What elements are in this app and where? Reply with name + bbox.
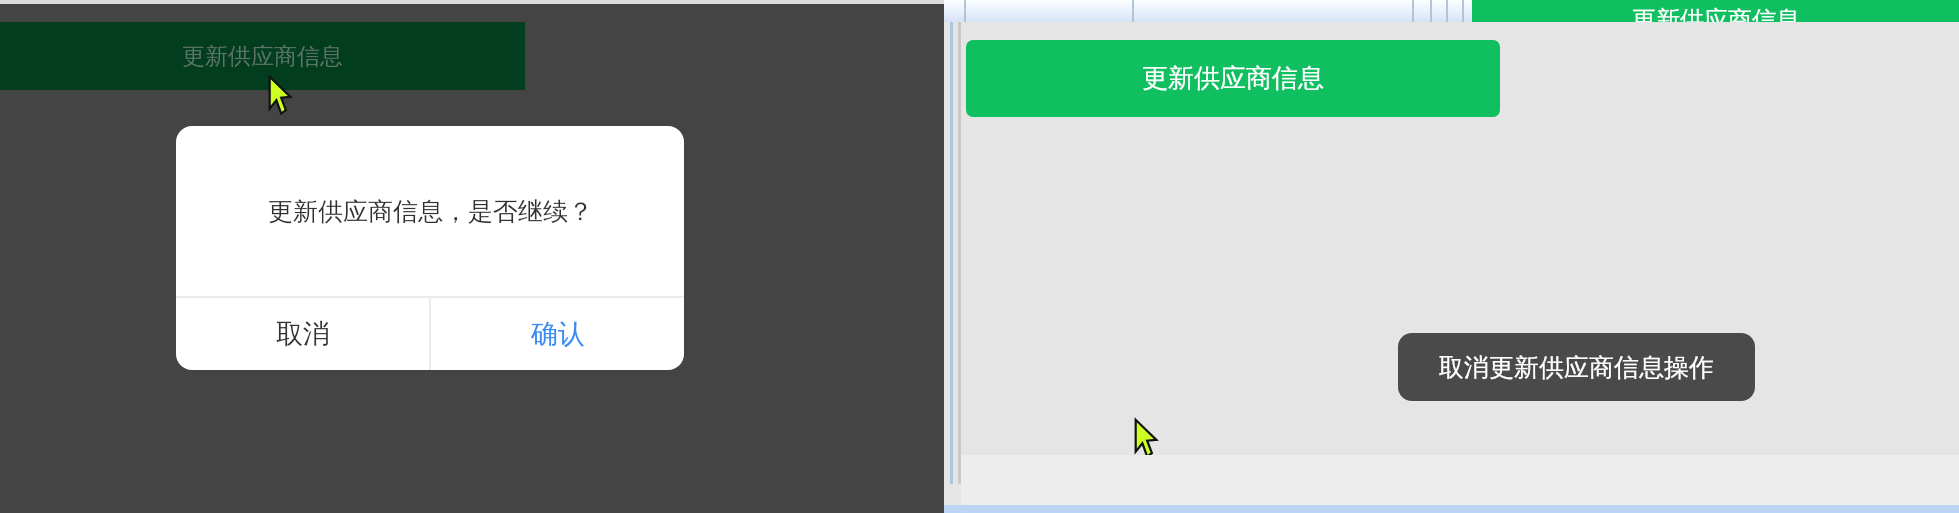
staticText: 确认 xyxy=(531,317,585,351)
other: Pointer xyxy=(268,76,296,114)
button[interactable]: 确认 xyxy=(431,298,684,370)
staticText: 更新供应商信息 xyxy=(1632,5,1800,27)
staticText: 更新供应商信息，是否继续？ xyxy=(268,196,593,227)
staticText: 更新供应商信息 xyxy=(1142,62,1324,95)
button[interactable]: 更新供应商信息 xyxy=(966,40,1500,117)
staticText: 更新供应商信息 xyxy=(182,42,343,71)
other: Pointer xyxy=(1134,419,1162,457)
staticText: 取消 xyxy=(276,317,330,351)
button[interactable]: 更新供应商信息 xyxy=(0,22,525,90)
staticText: 取消更新供应商信息操作 xyxy=(1439,352,1714,383)
button[interactable]: 取消 xyxy=(176,298,429,370)
